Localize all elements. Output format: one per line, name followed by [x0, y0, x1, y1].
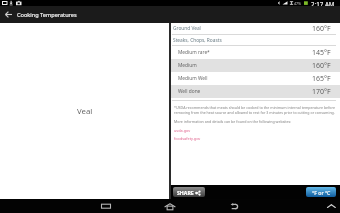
button[interactable]: Well done [171, 85, 340, 98]
button[interactable]: usda.gov [174, 128, 191, 133]
button[interactable]: Home [152, 199, 188, 213]
staticText: Steaks, Chops, Roasts [173, 37, 222, 44]
staticText: 145°F [312, 48, 331, 58]
staticText: Medium rare* [178, 49, 210, 56]
staticText: 47% [294, 1, 302, 6]
button[interactable]: Recent apps [88, 199, 124, 213]
staticText: usda.gov [174, 128, 191, 133]
staticText: °F or °C [312, 189, 331, 196]
button[interactable]: Steaks, Chops, Roasts [171, 35, 340, 45]
staticText: foodsafety.gov [174, 136, 201, 141]
button[interactable]: SHARE [173, 187, 205, 197]
button[interactable]: °F or °C [306, 187, 336, 197]
staticText: Medium Well [178, 75, 208, 82]
staticText: removing from the heat source and allowe… [174, 110, 335, 115]
staticText: 160°F [312, 24, 331, 34]
staticText: Ground Veal [173, 25, 201, 32]
staticText: More information and details can be foun… [174, 119, 292, 124]
button[interactable]: Show notifications [322, 199, 340, 213]
button[interactable]: Back [216, 199, 252, 213]
button[interactable]: Back [0, 6, 17, 23]
staticText: *USDA recommends that meats should be co… [174, 105, 335, 110]
staticText: Veal [77, 106, 93, 117]
staticText: 2:17 AM [311, 0, 335, 6]
staticText: 170°F [312, 87, 331, 97]
button[interactable]: foodsafety.gov [174, 136, 201, 141]
button[interactable]: Ground Veal [171, 23, 340, 34]
staticText: SHARE [177, 189, 194, 196]
staticText: 165°F [312, 74, 331, 84]
button[interactable]: Medium [171, 59, 340, 72]
staticText: Medium [178, 62, 197, 69]
staticText: 160°F [312, 61, 331, 71]
staticText: Well done [178, 88, 201, 95]
button[interactable]: Medium rare* [171, 46, 340, 59]
button[interactable]: Medium Well [171, 72, 340, 85]
staticText: Cooking Temperatures [17, 11, 77, 19]
